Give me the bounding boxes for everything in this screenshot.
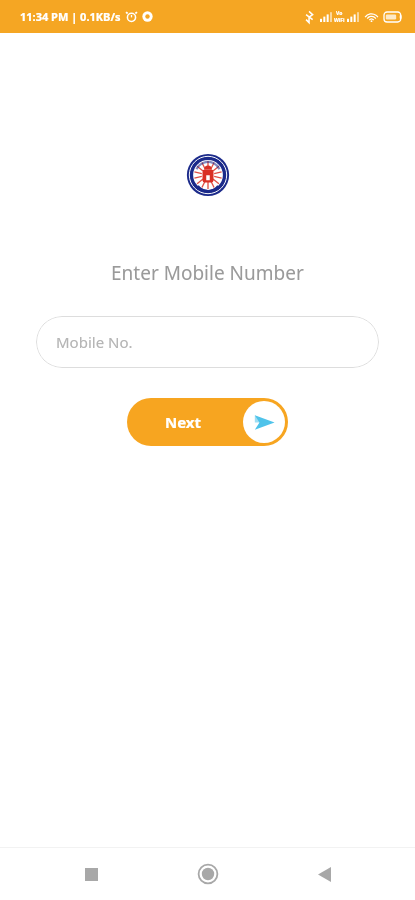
button[interactable]: Back [298, 848, 350, 900]
button[interactable]: Home [182, 848, 234, 900]
staticText: WiFi [334, 17, 345, 24]
staticText: Enter Mobile Number [111, 260, 304, 286]
button[interactable]: Mobile No. [36, 316, 379, 368]
staticText: Vo [336, 10, 343, 17]
staticText: Mobile No. [56, 332, 133, 352]
staticText: 11:34 PM | 0.1KB/s [20, 9, 121, 24]
button[interactable]: Recents [65, 848, 117, 900]
staticText: Next [165, 412, 202, 432]
button[interactable]: Next [127, 398, 288, 446]
